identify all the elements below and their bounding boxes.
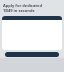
staticText: Apply for dedicated 1B49 in seconds	[3, 3, 61, 13]
button[interactable]	[5, 52, 59, 57]
